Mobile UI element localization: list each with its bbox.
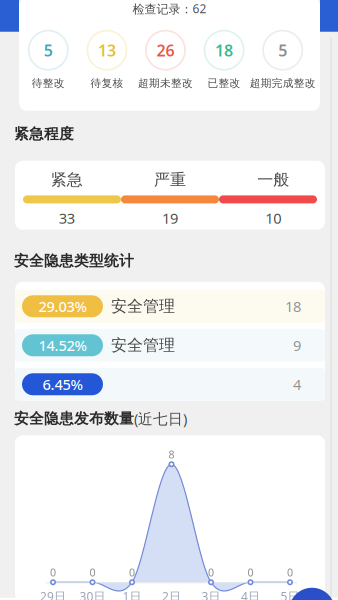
staticText: 18	[285, 296, 301, 316]
button[interactable]: 29.03%	[15, 290, 325, 323]
staticText: 0	[129, 565, 135, 579]
staticText: 0	[50, 565, 56, 579]
button[interactable]: 26	[138, 30, 193, 90]
staticText: 3日	[201, 588, 220, 600]
staticText: 5	[278, 40, 287, 61]
staticText: 30日	[79, 588, 105, 600]
staticText: 待整改	[32, 77, 65, 90]
staticText: 14.52%	[38, 335, 86, 355]
staticText: 33	[59, 208, 75, 228]
staticText: 29.03%	[38, 296, 86, 316]
staticText: 6.45%	[42, 374, 82, 394]
staticText: 安全隐患发布数量	[14, 409, 134, 427]
staticText: 待复核	[90, 77, 123, 90]
staticText: 0	[287, 565, 293, 579]
button[interactable]: 18	[204, 30, 245, 90]
staticText: 18	[215, 40, 233, 61]
staticText: 0	[247, 565, 253, 579]
button[interactable]: 5	[28, 30, 69, 90]
staticText: 安全管理	[111, 296, 175, 316]
staticText: 5日	[280, 588, 299, 600]
staticText: 19	[162, 208, 178, 228]
staticText: 9	[293, 335, 301, 355]
staticText: 紧急	[51, 170, 83, 189]
staticText: 安全隐患类型统计	[14, 252, 134, 270]
staticText: 一般	[257, 170, 289, 189]
button[interactable]: 5	[250, 30, 316, 90]
staticText: 超期完成整改	[250, 77, 316, 90]
button[interactable]: 13	[86, 30, 127, 90]
staticText: 4日	[241, 588, 260, 600]
staticText: 26	[156, 40, 174, 61]
button[interactable]: 14.52%	[15, 329, 325, 362]
staticText: 检查记录：62	[132, 1, 206, 17]
staticText: (近七日)	[134, 409, 187, 428]
staticText: 超期未整改	[138, 77, 193, 90]
button[interactable]: 新增	[289, 588, 335, 600]
staticText: 安全管理	[111, 335, 175, 355]
staticText: 1日	[122, 588, 141, 600]
staticText: 紧急程度	[14, 125, 74, 143]
staticText: 8	[168, 447, 174, 461]
staticText: 29日	[40, 588, 66, 600]
staticText: 10	[265, 208, 281, 228]
staticText: 13	[98, 40, 116, 61]
button[interactable]: 6.45%	[15, 368, 325, 401]
staticText: 严重	[154, 170, 186, 189]
staticText: 0	[89, 565, 95, 579]
staticText: 已整改	[208, 77, 241, 90]
staticText: 0	[208, 565, 214, 579]
staticText: 4	[293, 374, 301, 394]
staticText: 2日	[162, 588, 181, 600]
staticText: 5	[44, 40, 53, 61]
